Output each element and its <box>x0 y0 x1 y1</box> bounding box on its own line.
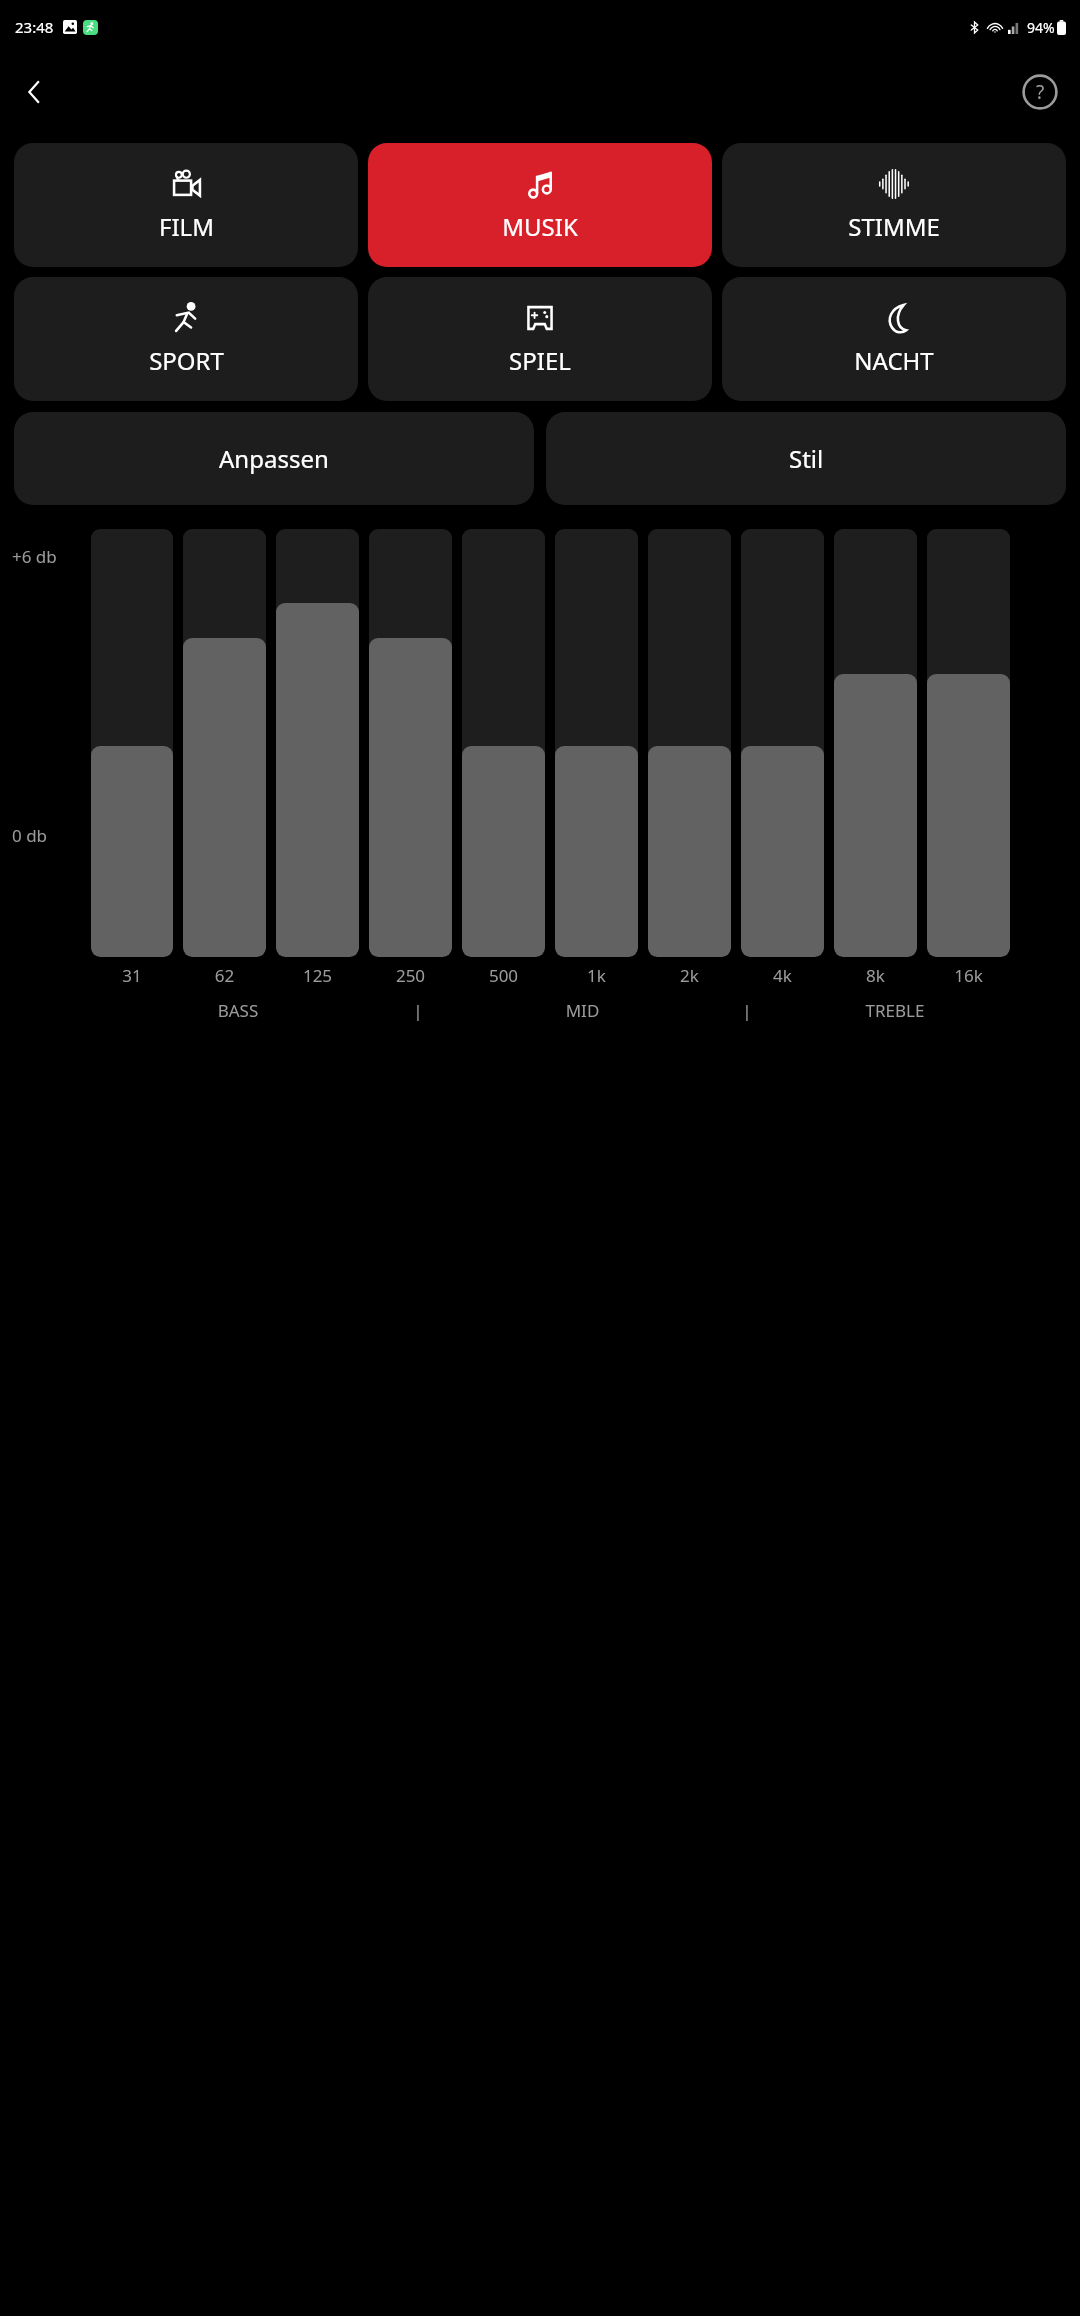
staticText: 500 <box>462 964 545 987</box>
button[interactable]: Anpassen <box>14 412 534 505</box>
staticText: 23:48 <box>15 17 54 37</box>
button[interactable]: 1k Hz band <box>555 529 638 957</box>
staticText: 62 <box>183 964 266 987</box>
button[interactable]: Stil <box>546 412 1066 505</box>
staticText: SPORT <box>149 344 224 377</box>
button[interactable]: SPIEL <box>368 277 712 401</box>
button[interactable]: 62 Hz band <box>183 529 266 957</box>
button[interactable]: NACHT <box>722 277 1066 401</box>
button[interactable]: SPORT <box>14 277 358 401</box>
staticText: 0 db <box>12 824 48 847</box>
staticText: Anpassen <box>219 442 329 475</box>
button[interactable]: 8k Hz band <box>834 529 917 957</box>
staticText: 31 <box>91 964 173 987</box>
staticText: | <box>385 999 451 1022</box>
button[interactable]: 125 Hz band <box>276 529 359 957</box>
button[interactable]: 4k Hz band <box>741 529 824 957</box>
staticText: 4k <box>741 964 824 987</box>
button[interactable]: 500 Hz band <box>462 529 545 957</box>
button[interactable]: 31 Hz band <box>91 529 173 957</box>
button[interactable]: MUSIK <box>368 143 712 267</box>
button[interactable]: 2k Hz band <box>648 529 731 957</box>
button[interactable]: Back <box>8 66 60 118</box>
button[interactable]: 250 Hz band <box>369 529 452 957</box>
staticText: +6 db <box>12 545 57 568</box>
staticText: STIMME <box>848 210 940 243</box>
staticText: SPIEL <box>509 344 571 377</box>
staticText: 8k <box>834 964 917 987</box>
staticText: 2k <box>648 964 731 987</box>
button[interactable]: FILM <box>14 143 358 267</box>
staticText: NACHT <box>854 344 934 377</box>
staticText: 16k <box>927 964 1010 987</box>
staticText: FILM <box>159 210 214 243</box>
staticText: 94% <box>1027 18 1055 37</box>
staticText: BASS <box>91 999 385 1022</box>
staticText: Stil <box>789 442 824 475</box>
staticText: MUSIK <box>502 210 578 243</box>
staticText: 250 <box>369 964 452 987</box>
button[interactable]: 16k Hz band <box>927 529 1010 957</box>
button[interactable]: STIMME <box>722 143 1066 267</box>
staticText: 125 <box>276 964 359 987</box>
staticText: ? <box>1036 79 1045 105</box>
staticText: 1k <box>555 964 638 987</box>
staticText: MID <box>451 999 714 1022</box>
staticText: TREBLE <box>780 999 1010 1022</box>
staticText: | <box>714 999 780 1022</box>
button[interactable]: Help <box>1014 66 1066 118</box>
